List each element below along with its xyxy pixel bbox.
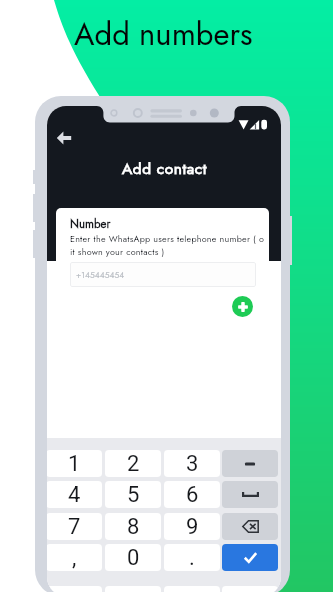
button[interactable]: 2 <box>105 450 161 477</box>
staticText: Add contact <box>122 157 207 179</box>
button[interactable]: +145445454 <box>70 262 256 287</box>
staticText: +145445454 <box>76 269 125 281</box>
staticText: it shown your contacts ) <box>70 245 165 258</box>
staticText: 5 <box>127 482 140 508</box>
button[interactable]: 4 <box>47 481 102 508</box>
button[interactable]: 6 <box>164 481 220 508</box>
staticText: 6 <box>186 482 199 508</box>
button[interactable]: , <box>47 544 102 571</box>
staticText: 8 <box>127 514 140 540</box>
button[interactable]: 8 <box>105 513 161 540</box>
staticText: 2 <box>127 451 140 477</box>
button[interactable] <box>222 544 278 571</box>
button[interactable]: . <box>164 544 220 571</box>
button[interactable]: Back <box>49 123 79 153</box>
staticText: 9 <box>186 514 199 540</box>
staticText: 1 <box>68 451 81 477</box>
button[interactable]: 1 <box>47 450 102 477</box>
button[interactable] <box>222 481 278 508</box>
button[interactable] <box>222 450 278 477</box>
staticText: Enter the WhatsApp users telephone numbe… <box>70 232 265 245</box>
staticText: Add numbers <box>74 12 253 57</box>
button[interactable]: 0 <box>105 544 161 571</box>
staticText: 0 <box>127 545 140 571</box>
staticText: , <box>72 545 77 571</box>
button[interactable] <box>222 513 278 540</box>
staticText: . <box>189 545 195 571</box>
button[interactable]: 9 <box>164 513 220 540</box>
staticText: 3 <box>186 451 199 477</box>
staticText: 7 <box>68 514 81 540</box>
staticText: 4 <box>68 482 81 508</box>
button[interactable]: 3 <box>164 450 220 477</box>
staticText: Number <box>70 216 111 233</box>
button[interactable]: Add <box>232 296 253 317</box>
button[interactable]: 5 <box>105 481 161 508</box>
button[interactable]: 7 <box>47 513 102 540</box>
